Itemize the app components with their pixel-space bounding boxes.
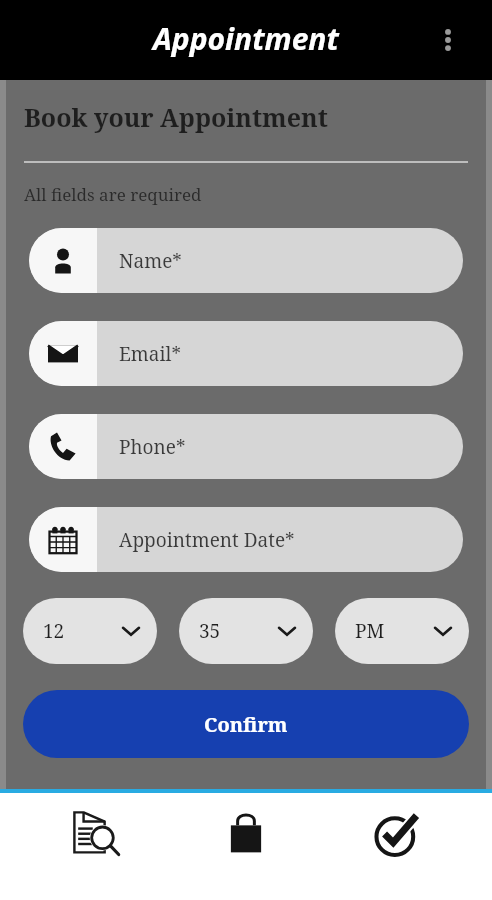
staticText: Appointment	[153, 18, 339, 59]
staticText: Email*	[119, 341, 181, 367]
button[interactable]: 35	[179, 598, 313, 664]
staticText: Phone*	[119, 434, 186, 460]
button[interactable]: Shop bag	[191, 793, 301, 900]
button[interactable]: Phone*	[29, 414, 463, 479]
button[interactable]: More options	[428, 20, 468, 60]
button[interactable]: Confirm	[23, 690, 469, 758]
button[interactable]: 12	[23, 598, 157, 664]
staticText: Name*	[119, 248, 182, 274]
staticText: 12	[43, 618, 65, 644]
staticText: Book your Appointment	[24, 100, 328, 134]
staticText: Confirm	[204, 711, 288, 738]
staticText: 35	[199, 618, 221, 644]
staticText: PM	[355, 618, 385, 644]
staticText: Appointment Date*	[119, 527, 295, 553]
button[interactable]: Name*	[29, 228, 463, 293]
button[interactable]: Search records	[41, 793, 151, 900]
button[interactable]: PM	[335, 598, 469, 664]
button[interactable]: Email*	[29, 321, 463, 386]
button[interactable]: Confirmed tasks	[342, 793, 452, 900]
staticText: All fields are required	[24, 183, 202, 206]
button[interactable]: Appointment Date*	[29, 507, 463, 572]
